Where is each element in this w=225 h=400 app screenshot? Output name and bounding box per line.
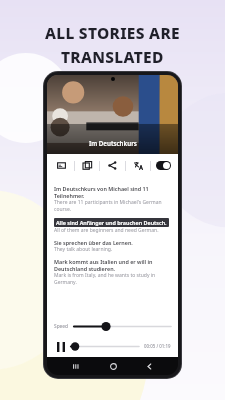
staticText: 00:05 / 01:19 xyxy=(144,343,171,349)
staticText: Im Deutschkurs von Michael sind 11 xyxy=(54,185,149,192)
button[interactable]: Copy xyxy=(80,158,95,173)
staticText: There are 11 participants in Michael's G… xyxy=(54,199,162,206)
button[interactable]: Toggle translation xyxy=(156,161,171,170)
staticText: Sie sprechen über das Lernen. xyxy=(54,239,133,246)
staticText: ALL STORIES ARE xyxy=(45,22,180,43)
staticText: Mark is from Italy, and he wants to stud… xyxy=(54,272,156,279)
button[interactable]: Slider xyxy=(74,321,171,332)
button[interactable]: Share xyxy=(105,158,120,173)
staticText: TRANSLATED xyxy=(61,46,164,67)
staticText: course. xyxy=(54,206,72,213)
button[interactable]: Pause xyxy=(54,340,67,353)
button[interactable]: Back xyxy=(141,358,157,374)
staticText: All of them are beginners and need Germa… xyxy=(54,227,159,234)
button[interactable]: Subtitles xyxy=(54,158,69,173)
staticText: Deutschland studieren. xyxy=(54,265,116,272)
staticText: Speed xyxy=(54,323,69,330)
staticText: Alle sind Anfänger und brauchen Deutsch. xyxy=(56,219,167,226)
button[interactable]: Translate xyxy=(131,158,146,173)
staticText: Teilnehmer. xyxy=(54,192,85,199)
button[interactable]: Slider xyxy=(71,341,139,352)
staticText: Germany. xyxy=(54,279,77,286)
staticText: They talk about learning. xyxy=(54,246,113,253)
staticText: Im Deutschkurs xyxy=(89,139,137,147)
button[interactable]: Alle sind Anfänger und brauchen Deutsch. xyxy=(56,219,167,226)
button[interactable]: Recents xyxy=(68,358,84,374)
button[interactable]: Home xyxy=(105,358,121,374)
staticText: Mark kommt aus Italien und er will in xyxy=(54,258,153,265)
